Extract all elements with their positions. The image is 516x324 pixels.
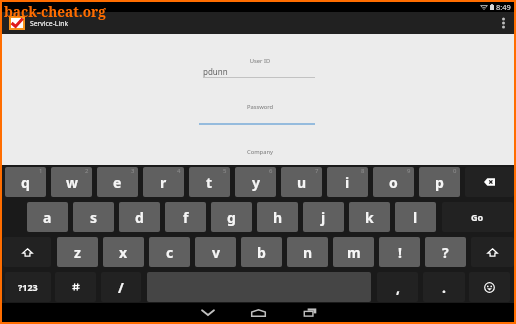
button[interactable]: h	[257, 202, 298, 232]
staticText: r	[160, 173, 167, 192]
button[interactable]: a	[27, 202, 68, 232]
staticText: Go	[471, 211, 484, 223]
staticText: 9	[407, 167, 411, 175]
staticText: .	[442, 278, 446, 297]
staticText: 7	[315, 167, 319, 175]
staticText: 8	[361, 167, 365, 175]
button[interactable]: s	[73, 202, 114, 232]
button[interactable]: ?123	[5, 272, 51, 302]
button[interactable]: Go	[442, 202, 513, 232]
button[interactable]: d	[119, 202, 160, 232]
button[interactable]: !	[379, 237, 420, 267]
staticText: c	[166, 243, 174, 262]
staticText: o	[389, 173, 398, 192]
staticText: x	[119, 243, 128, 262]
staticText: g	[227, 208, 236, 227]
button[interactable]: o	[373, 167, 414, 197]
button[interactable]: f	[165, 202, 206, 232]
staticText: /	[118, 278, 124, 297]
button[interactable]: i	[327, 167, 368, 197]
staticText: Company	[200, 148, 320, 156]
staticText: ?123	[18, 281, 38, 293]
button[interactable]: /	[101, 272, 141, 302]
button[interactable]: More options	[492, 12, 514, 34]
button[interactable]: k	[349, 202, 390, 232]
button[interactable]: b	[241, 237, 282, 267]
staticText: e	[113, 173, 122, 192]
staticText: l	[413, 208, 418, 227]
button[interactable]: Backspace	[465, 167, 514, 197]
staticText: Service-Link	[30, 19, 69, 28]
button[interactable]: u	[281, 167, 322, 197]
staticText: ,	[396, 278, 400, 297]
staticText: 4	[177, 167, 181, 175]
staticText: 1	[39, 167, 43, 175]
button[interactable]: v	[195, 237, 236, 267]
button[interactable]: r	[143, 167, 184, 197]
button[interactable]: y	[235, 167, 276, 197]
button[interactable]: p	[419, 167, 460, 197]
staticText: d	[135, 208, 144, 227]
button[interactable]: z	[57, 237, 98, 267]
staticText: h	[273, 208, 283, 227]
staticText: b	[257, 243, 266, 262]
button[interactable]: Shift	[3, 237, 51, 267]
staticText: 3	[131, 167, 135, 175]
staticText: pdunn	[203, 66, 228, 77]
button[interactable]: j	[303, 202, 344, 232]
button[interactable]: g	[211, 202, 252, 232]
staticText: ?	[442, 243, 449, 262]
button[interactable]: Hide keyboard	[182, 303, 233, 322]
button[interactable]: m	[333, 237, 374, 267]
staticText: a	[43, 208, 52, 227]
staticText: 0	[453, 167, 457, 175]
button[interactable]: t	[189, 167, 230, 197]
staticText: !	[398, 243, 402, 262]
staticText: v	[212, 243, 220, 262]
button[interactable]: w	[51, 167, 92, 197]
button[interactable]: e	[97, 167, 138, 197]
button[interactable]: c	[149, 237, 190, 267]
button[interactable]: Emoji	[469, 272, 510, 302]
staticText: z	[74, 243, 81, 262]
staticText: back-cheat.org	[4, 2, 106, 21]
staticText: 8:49	[496, 2, 511, 12]
staticText: m	[347, 243, 361, 262]
button[interactable]: .	[423, 272, 465, 302]
button[interactable]: Shift	[471, 237, 514, 267]
button[interactable]: n	[287, 237, 328, 267]
button[interactable]: x	[103, 237, 144, 267]
staticText: s	[90, 208, 98, 227]
staticText: q	[21, 173, 30, 192]
button[interactable]: q	[5, 167, 46, 197]
button[interactable]: ?	[425, 237, 466, 267]
staticText: w	[66, 173, 78, 192]
staticText: 5	[223, 167, 227, 175]
staticText: p	[435, 173, 444, 192]
staticText: f	[183, 208, 189, 227]
staticText: u	[297, 173, 307, 192]
button[interactable]: Home	[233, 303, 284, 322]
staticText: 2	[85, 167, 89, 175]
button[interactable]: Recent apps	[284, 303, 335, 322]
staticText: 6	[269, 167, 273, 175]
staticText: i	[345, 173, 350, 192]
button[interactable]: ,	[377, 272, 418, 302]
staticText: j	[321, 208, 326, 227]
staticText: t	[206, 173, 213, 192]
staticText: Password	[200, 103, 320, 111]
button[interactable]: l	[395, 202, 436, 232]
staticText: n	[303, 243, 313, 262]
button[interactable]: Symbols	[55, 272, 96, 302]
staticText: User ID	[200, 57, 320, 65]
staticText: k	[365, 208, 374, 227]
staticText: y	[252, 173, 260, 192]
